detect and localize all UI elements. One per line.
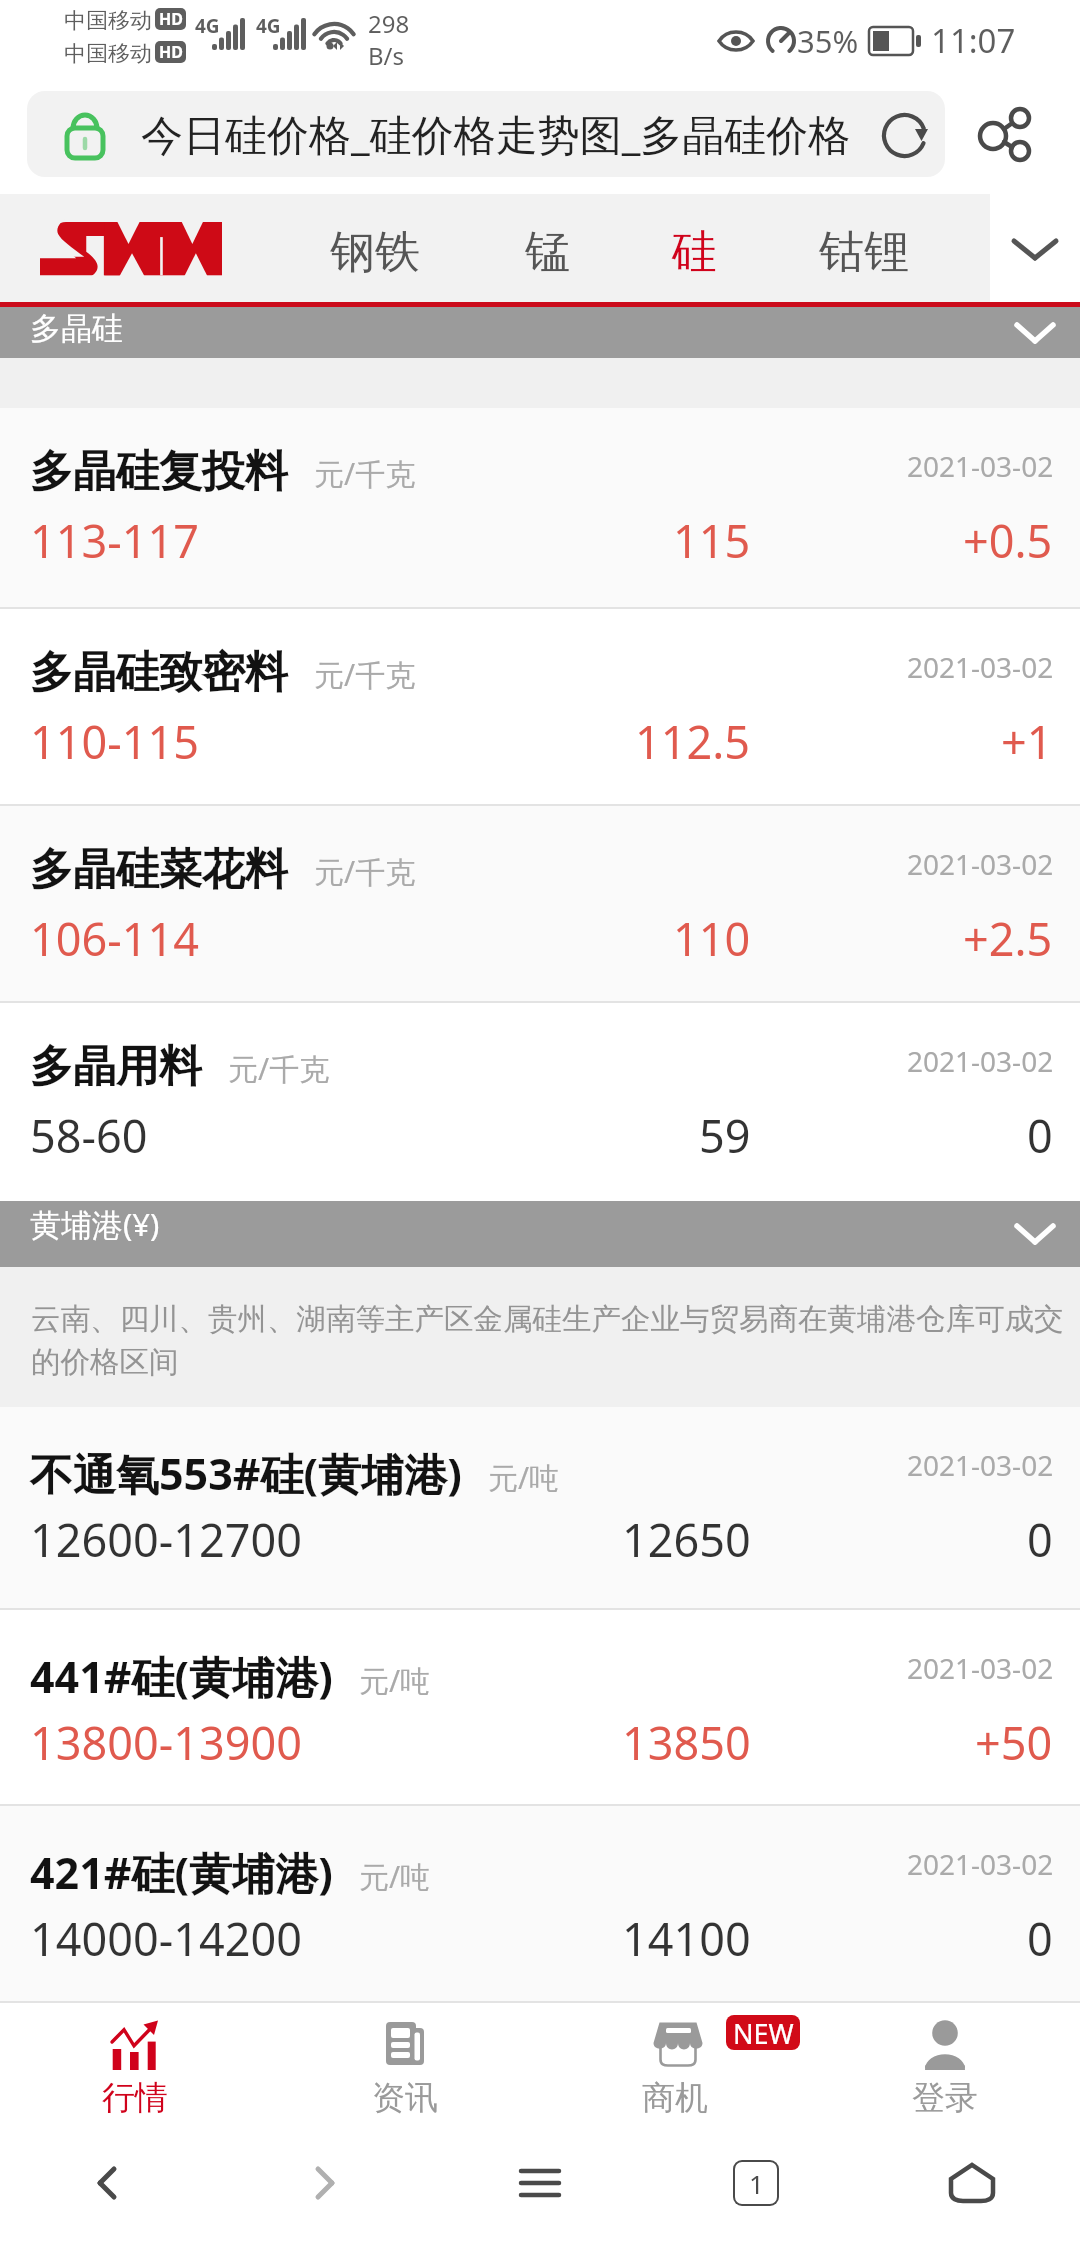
- staticText: HD: [159, 41, 183, 63]
- staticText: +2.5: [963, 908, 1053, 969]
- button[interactable]: 多晶硅: [0, 307, 1080, 358]
- staticText: +0.5: [963, 510, 1053, 571]
- button[interactable]: 黄埔港(¥): [0, 1201, 1080, 1267]
- staticText: 115: [673, 510, 751, 571]
- staticText: 12650: [622, 1509, 751, 1570]
- staticText: 110: [673, 908, 751, 969]
- staticText: 多晶用料: [30, 1040, 202, 1094]
- staticText: 0: [1027, 1105, 1053, 1166]
- button[interactable]: 多晶用料: [0, 1003, 1080, 1201]
- button[interactable]: 多晶硅致密料: [0, 609, 1080, 804]
- staticText: 2021-03-02: [907, 1845, 1054, 1883]
- staticText: 元/吨: [488, 1457, 560, 1498]
- staticText: 441#硅(黄埔港): [30, 1647, 333, 1706]
- staticText: 2021-03-02: [907, 648, 1054, 686]
- staticText: 2021-03-02: [907, 845, 1054, 883]
- staticText: 1: [749, 2166, 764, 2201]
- staticText: 0: [1027, 1509, 1053, 1570]
- button[interactable]: Tabs: [648, 2122, 864, 2244]
- staticText: 元/千克: [314, 453, 416, 494]
- button[interactable]: 商机: [540, 2001, 810, 2122]
- staticText: 4G: [195, 13, 220, 39]
- staticText: 11:07: [931, 18, 1016, 63]
- staticText: 112.5: [635, 711, 751, 772]
- button[interactable]: 行情: [0, 2001, 270, 2122]
- staticText: 黄埔港(¥): [30, 1203, 160, 1245]
- staticText: 14000-14200: [30, 1908, 302, 1969]
- staticText: 298: [368, 7, 410, 40]
- staticText: 多晶硅菜花料: [30, 843, 288, 897]
- staticText: 行情: [102, 2077, 168, 2119]
- staticText: 云南、四川、贵州、湖南等主产区金属硅生产企业与贸易商在黄埔港仓库可成交的价格区间: [31, 1301, 1074, 1381]
- staticText: 多晶硅复投料: [30, 445, 288, 499]
- staticText: 锰: [525, 224, 570, 281]
- button[interactable]: 钢铁: [315, 202, 435, 303]
- staticText: B/s: [368, 39, 405, 72]
- button[interactable]: 421#硅(黄埔港): [0, 1806, 1080, 2001]
- staticText: 4G: [256, 13, 281, 39]
- staticText: 多晶硅: [30, 309, 123, 348]
- button[interactable]: 硅: [657, 202, 732, 303]
- button[interactable]: 登录: [810, 2001, 1080, 2122]
- button[interactable]: Share: [963, 91, 1049, 177]
- staticText: 元/千克: [314, 654, 416, 695]
- staticText: +1: [1001, 711, 1053, 772]
- button[interactable]: Menu: [432, 2122, 648, 2244]
- button[interactable]: Back: [0, 2122, 216, 2244]
- staticText: 元/千克: [314, 851, 416, 892]
- staticText: 元/吨: [359, 1660, 431, 1701]
- staticText: 2021-03-02: [907, 1649, 1054, 1687]
- staticText: 不通氧553#硅(黄埔港): [30, 1444, 462, 1503]
- button[interactable]: Expand: [990, 194, 1080, 302]
- staticText: 元/吨: [359, 1856, 431, 1897]
- button[interactable]: Home: [864, 2122, 1080, 2244]
- staticText: NEW: [733, 2015, 794, 2050]
- staticText: 13800-13900: [30, 1712, 302, 1773]
- staticText: 13850: [622, 1712, 751, 1773]
- staticText: 58-60: [30, 1105, 148, 1166]
- button[interactable]: Forward: [216, 2122, 432, 2244]
- staticText: 2021-03-02: [907, 1042, 1054, 1080]
- staticText: +50: [975, 1712, 1053, 1773]
- staticText: 中国移动: [64, 40, 152, 68]
- staticText: 商机: [642, 2077, 708, 2119]
- staticText: 今日硅价格_硅价格走势图_多晶硅价格: [141, 105, 851, 162]
- button[interactable]: 今日硅价格_硅价格走势图_多晶硅价格: [27, 91, 945, 177]
- staticText: 钢铁: [330, 224, 420, 281]
- button[interactable]: 不通氧553#硅(黄埔港): [0, 1407, 1080, 1608]
- staticText: HD: [159, 8, 183, 30]
- staticText: 中国移动: [64, 7, 152, 35]
- staticText: 2021-03-02: [907, 1446, 1054, 1484]
- button[interactable]: 资讯: [270, 2001, 540, 2122]
- button[interactable]: 锰: [510, 202, 585, 303]
- button[interactable]: 多晶硅复投料: [0, 408, 1080, 607]
- staticText: 113-117: [30, 510, 199, 571]
- button[interactable]: 441#硅(黄埔港): [0, 1610, 1080, 1804]
- staticText: 59: [699, 1105, 751, 1166]
- staticText: 资讯: [372, 2077, 438, 2119]
- staticText: 106-114: [30, 908, 199, 969]
- staticText: 12600-12700: [30, 1509, 302, 1570]
- staticText: 110-115: [30, 711, 199, 772]
- staticText: 14100: [622, 1908, 751, 1969]
- staticText: 2021-03-02: [907, 447, 1054, 485]
- staticText: 421#硅(黄埔港): [30, 1843, 333, 1902]
- staticText: 0: [1027, 1908, 1053, 1969]
- button[interactable]: 多晶硅菜花料: [0, 806, 1080, 1001]
- staticText: 钴锂: [819, 224, 909, 281]
- staticText: 35%: [797, 20, 859, 62]
- staticText: 多晶硅致密料: [30, 646, 288, 700]
- staticText: 元/千克: [228, 1048, 330, 1089]
- staticText: 登录: [912, 2077, 978, 2119]
- button[interactable]: 钴锂: [804, 202, 924, 303]
- staticText: 硅: [672, 224, 717, 281]
